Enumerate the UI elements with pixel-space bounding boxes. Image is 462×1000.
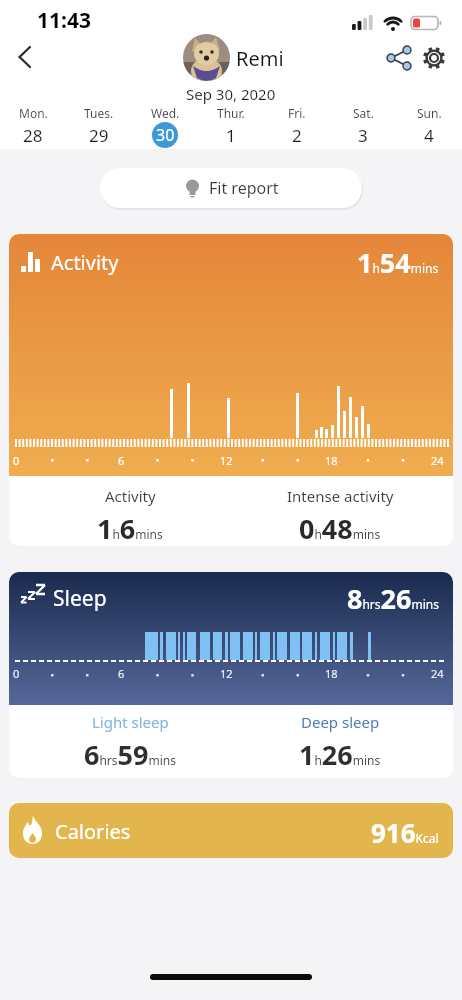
button[interactable]: Sat. bbox=[330, 105, 396, 148]
staticText: Activity bbox=[105, 486, 156, 506]
staticText: Sun. bbox=[417, 105, 442, 121]
staticText: Sep 30, 2020 bbox=[186, 84, 276, 104]
staticText: 12 bbox=[220, 666, 233, 681]
staticText: Calories bbox=[55, 818, 131, 845]
button[interactable]: Calories bbox=[9, 803, 453, 858]
button[interactable] bbox=[183, 34, 230, 81]
staticText: Sleep bbox=[53, 584, 107, 613]
button[interactable]: Tues. bbox=[66, 105, 132, 148]
staticText: 0 bbox=[13, 453, 20, 468]
staticText: 29 bbox=[89, 124, 109, 147]
staticText: 0h48mins bbox=[299, 510, 381, 546]
staticText: Mon. bbox=[19, 105, 48, 121]
button[interactable]: Sleep bbox=[9, 572, 453, 778]
staticText: 24 bbox=[431, 453, 444, 468]
staticText: Intense activity bbox=[287, 486, 394, 506]
staticText: Light sleep bbox=[92, 712, 169, 732]
staticText: 11:43 bbox=[37, 6, 91, 35]
staticText: Remi bbox=[236, 45, 284, 72]
staticText: 0 bbox=[13, 666, 20, 681]
button[interactable]: Sun. bbox=[396, 105, 462, 148]
staticText: 1h54mins bbox=[357, 244, 439, 281]
button[interactable]: Activity bbox=[9, 234, 453, 546]
staticText: Wed. bbox=[151, 105, 180, 121]
staticText: 18 bbox=[325, 453, 338, 468]
staticText: 18 bbox=[325, 666, 338, 681]
button[interactable]: Fit report bbox=[100, 168, 362, 208]
staticText: Thur. bbox=[217, 105, 245, 121]
button[interactable]: Thur. bbox=[198, 105, 264, 148]
staticText: 8hrs26mins bbox=[347, 580, 439, 617]
button[interactable] bbox=[384, 43, 414, 73]
button[interactable] bbox=[419, 43, 449, 73]
staticText: 30 bbox=[156, 124, 175, 146]
staticText: Tues. bbox=[84, 105, 114, 121]
staticText: 6 bbox=[118, 453, 125, 468]
staticText: 12 bbox=[220, 453, 233, 468]
staticText: 2 bbox=[292, 124, 302, 147]
button[interactable]: Mon. bbox=[0, 105, 66, 148]
staticText: Fit report bbox=[209, 177, 279, 199]
staticText: 1h6mins bbox=[97, 510, 163, 546]
staticText: 6 bbox=[118, 666, 125, 681]
button[interactable] bbox=[10, 40, 44, 74]
staticText: 24 bbox=[431, 666, 444, 681]
staticText: 3 bbox=[358, 124, 368, 147]
staticText: 6hrs59mins bbox=[84, 736, 176, 773]
staticText: 916Kcal bbox=[371, 815, 439, 850]
staticText: Sat. bbox=[353, 105, 374, 121]
staticText: 28 bbox=[23, 124, 43, 147]
staticText: Deep sleep bbox=[301, 712, 380, 732]
button[interactable]: Wed. bbox=[132, 105, 198, 148]
staticText: Fri. bbox=[288, 105, 306, 121]
staticText: 1 bbox=[226, 124, 236, 147]
staticText: Activity bbox=[51, 249, 119, 276]
staticText: 4 bbox=[424, 124, 434, 147]
staticText: 1h26mins bbox=[299, 736, 381, 773]
button[interactable]: Fri. bbox=[264, 105, 330, 148]
